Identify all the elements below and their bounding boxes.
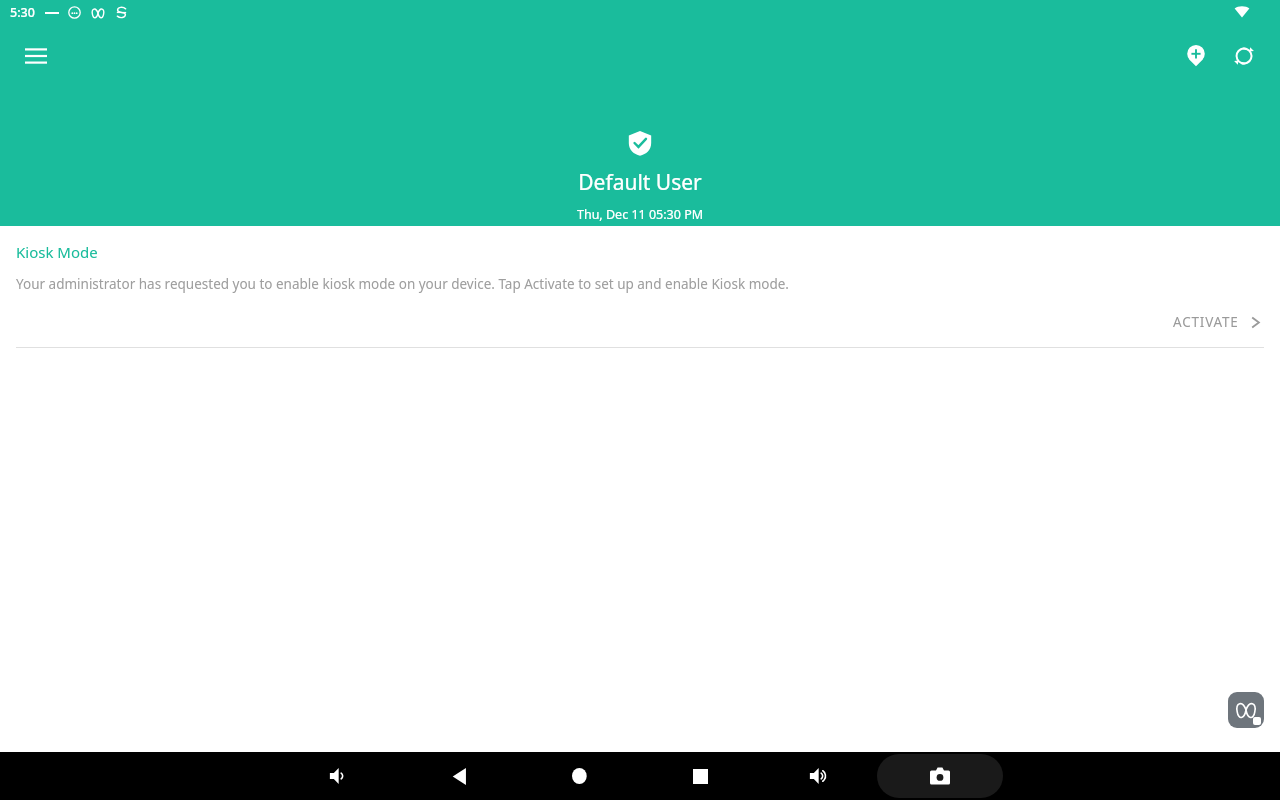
button[interactable]: ACTIVATE: [1155, 303, 1280, 341]
staticText: ACTIVATE: [1173, 313, 1239, 331]
button[interactable]: Home: [558, 754, 602, 798]
staticText: 5:30: [10, 4, 35, 21]
button[interactable]: Back: [437, 754, 481, 798]
button[interactable]: Add location: [1172, 32, 1220, 80]
button[interactable]: Open navigation menu: [12, 32, 60, 80]
staticText: Kiosk Mode: [16, 242, 98, 262]
staticText: Your administrator has requested you to …: [16, 275, 789, 293]
staticText: Thu, Dec 11 05:30 PM: [0, 206, 1280, 223]
button[interactable]: Recent apps: [678, 754, 722, 798]
staticText: Default User: [0, 168, 1280, 197]
button[interactable]: Assistant: [1228, 692, 1264, 728]
button[interactable]: Volume up: [798, 754, 842, 798]
button[interactable]: Sync: [1220, 32, 1268, 80]
button[interactable]: Volume down: [318, 754, 362, 798]
button[interactable]: Camera: [877, 754, 1003, 798]
